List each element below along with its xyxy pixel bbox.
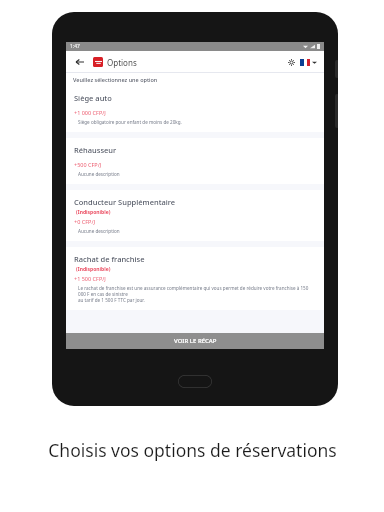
staticText: (Indisponible) [76,266,111,273]
button[interactable]: Settings [285,56,297,68]
staticText: Aucune description [78,228,120,234]
staticText: Réhausseur [74,145,117,155]
staticText: +0 CFP/J [74,218,95,225]
staticText: VOIR LE RÉCAP [174,337,217,345]
button[interactable]: Back [73,55,87,69]
staticText: Le rachat de franchise est une assurance… [78,285,316,297]
staticText: Veuillez sélectionnez une option [73,76,158,83]
button[interactable]: Language [300,59,317,66]
staticText: Choisis vos options de réservations [48,438,337,462]
button[interactable]: Conducteur Supplémentaire [66,190,324,241]
staticText: Conducteur Supplémentaire [74,197,176,207]
staticText: (Indisponible) [76,209,111,216]
staticText: au tarif de 1 500 F TTC par jour. [78,297,145,303]
staticText: Rachat de franchise [74,254,145,264]
staticText: Options [107,57,137,68]
staticText: +1 000 CFP/J [74,109,106,116]
staticText: Siège obligatoire pour enfant de moins d… [78,119,182,125]
button[interactable]: Home [178,375,212,388]
button[interactable]: Réhausseur [66,138,324,184]
staticText: Siège auto [74,93,112,103]
staticText: 1:47 [70,43,80,50]
button[interactable]: VOIR LE RÉCAP [66,333,324,349]
staticText: Aucune description [78,171,120,177]
button[interactable]: Siège auto [66,86,324,132]
staticText: +500 CFP/J [74,161,102,168]
button[interactable]: Rachat de franchise [66,247,324,310]
staticText: +1 500 CFP/J [74,275,106,282]
